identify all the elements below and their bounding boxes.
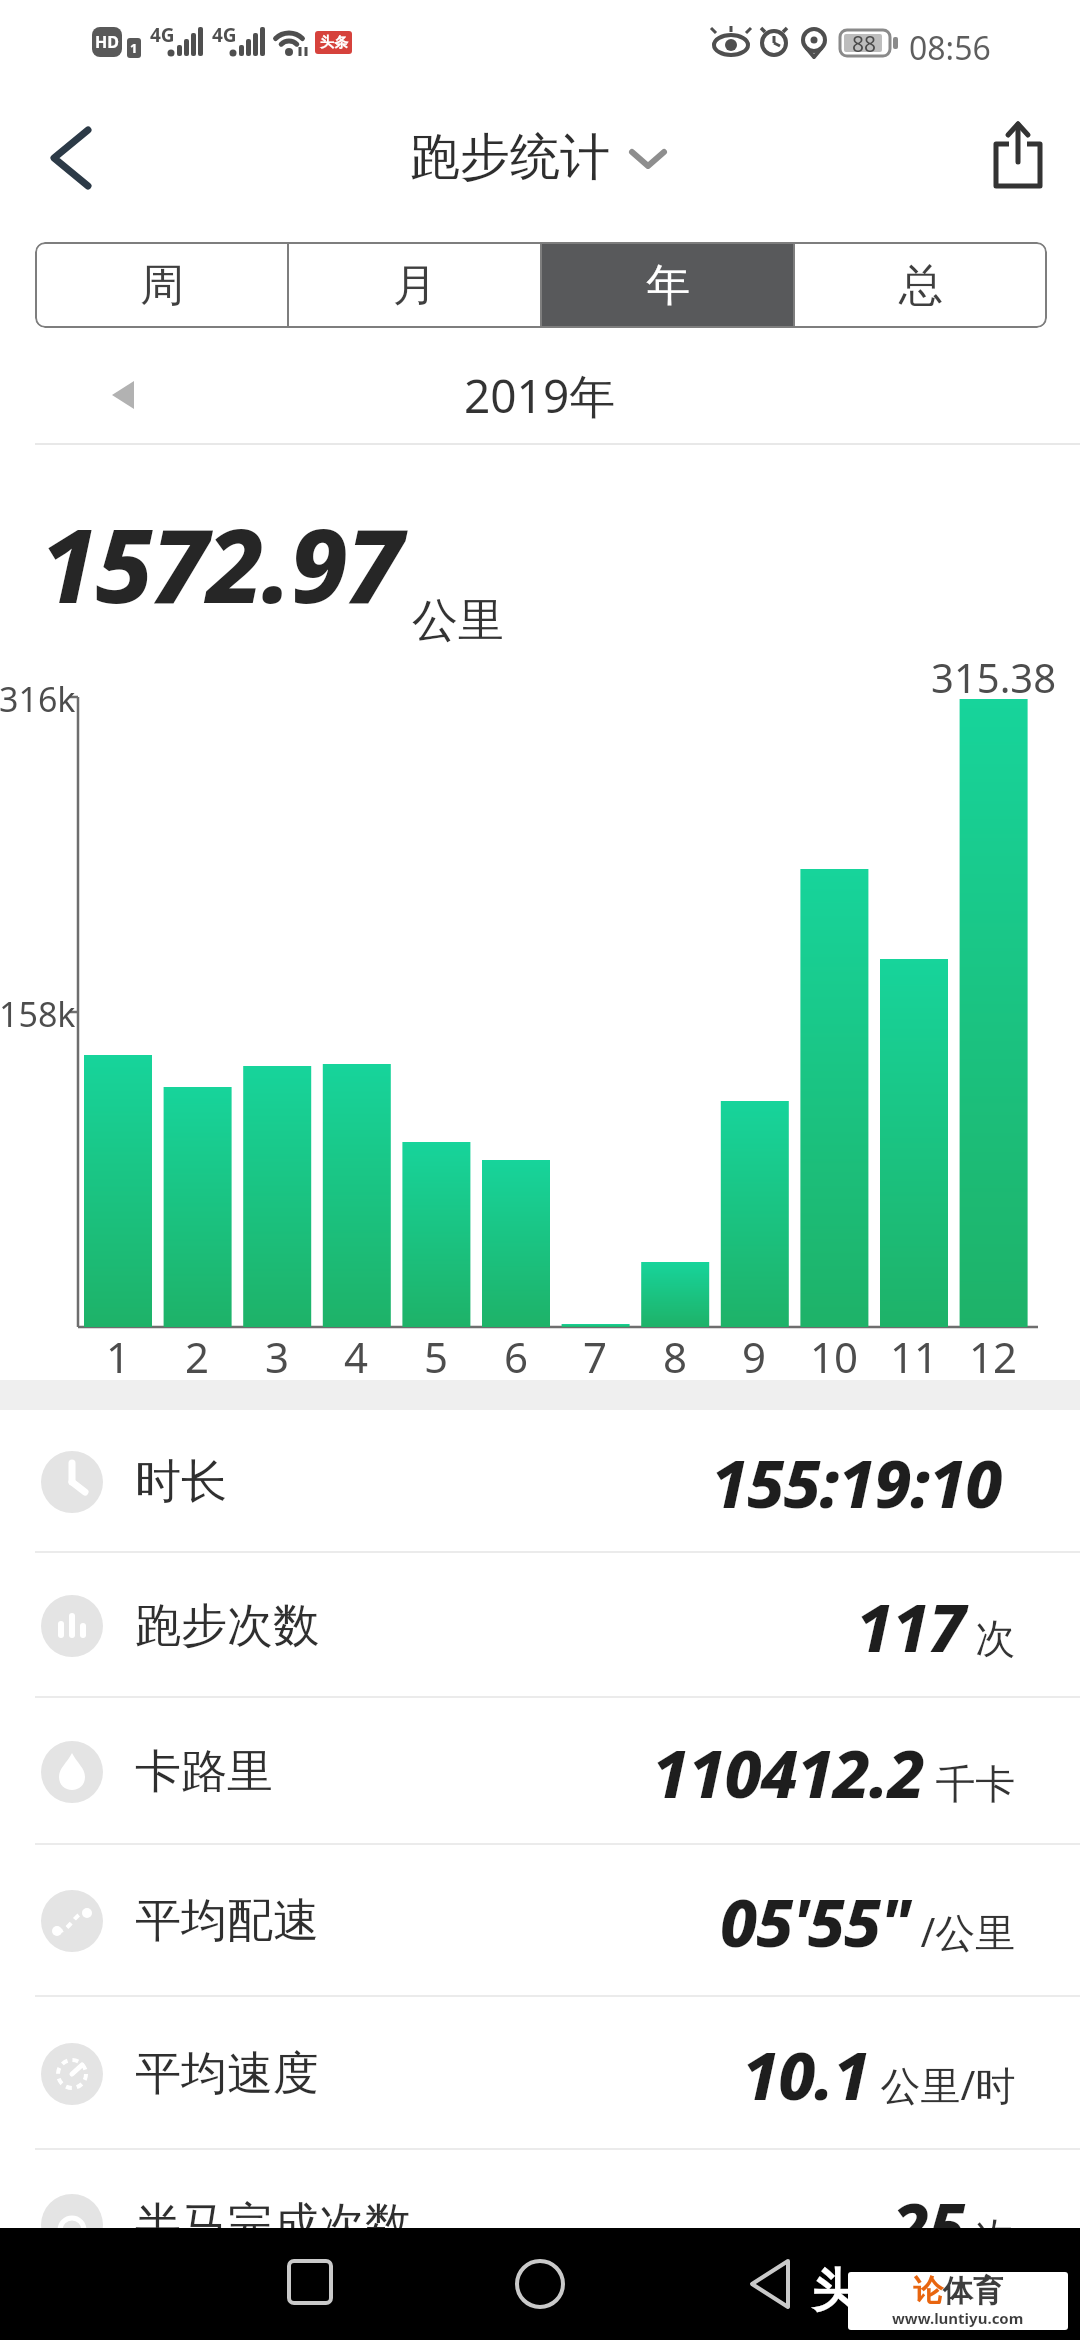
- staticText: 316k: [0, 676, 76, 718]
- staticText: 12: [969, 1328, 1018, 1376]
- staticText: 05'55": [720, 1876, 910, 1966]
- staticText: 155:19:10: [711, 1437, 1002, 1527]
- staticText: 158k: [0, 991, 76, 1033]
- staticText: 7: [583, 1328, 608, 1376]
- button[interactable]: [270, 2243, 350, 2325]
- staticText: 8: [663, 1328, 688, 1376]
- staticText: 总: [899, 258, 943, 313]
- button[interactable]: [730, 2243, 810, 2325]
- staticText: 11: [890, 1328, 939, 1376]
- button[interactable]: 跑步次数: [0, 1553, 1080, 1698]
- staticText: 110412.2: [652, 1727, 925, 1817]
- staticText: 1572.97: [40, 494, 402, 633]
- staticText: 跑步统计: [410, 126, 610, 189]
- button[interactable]: 跑步统计: [400, 120, 680, 196]
- staticText: 次: [965, 2208, 1016, 2263]
- staticText: 10.1: [742, 2029, 870, 2119]
- staticText: 公里/时: [870, 2057, 1016, 2112]
- staticText: 9: [742, 1328, 767, 1376]
- staticText: 25: [892, 2180, 965, 2270]
- staticText: 2019年: [464, 364, 616, 427]
- staticText: 时长: [135, 1453, 227, 1511]
- staticText: 1: [130, 39, 138, 57]
- staticText: 跑步次数: [135, 1597, 319, 1655]
- staticText: 6: [504, 1328, 529, 1376]
- staticText: 1: [106, 1328, 131, 1376]
- staticText: 月: [393, 258, 437, 313]
- staticText: 千卡: [925, 1755, 1016, 1810]
- button[interactable]: 半马完成次数: [0, 2150, 1080, 2300]
- staticText: 2: [185, 1328, 210, 1376]
- staticText: 半马完成次数: [135, 2196, 411, 2254]
- button[interactable]: 平均速度: [0, 1997, 1080, 2150]
- staticText: 头: [812, 2262, 858, 2320]
- button[interactable]: 2019年: [0, 345, 1080, 445]
- button[interactable]: [500, 2243, 580, 2325]
- staticText: 年: [646, 258, 690, 313]
- button[interactable]: 年: [541, 242, 794, 328]
- staticText: HD: [95, 31, 119, 53]
- button[interactable]: [30, 114, 110, 202]
- staticText: www.luntiyu.com: [892, 2308, 1024, 2328]
- button[interactable]: 周: [35, 242, 288, 328]
- staticText: 周: [140, 258, 184, 313]
- staticText: 平均配速: [135, 1892, 319, 1950]
- button[interactable]: 总: [794, 242, 1047, 328]
- staticText: 117: [856, 1581, 965, 1671]
- staticText: 5: [424, 1328, 449, 1376]
- button[interactable]: 平均配速: [0, 1845, 1080, 1997]
- staticText: 卡路里: [135, 1743, 273, 1801]
- button[interactable]: 月: [288, 242, 541, 328]
- staticText: 公里: [412, 592, 504, 650]
- button[interactable]: [980, 114, 1060, 202]
- button[interactable]: 卡路里: [0, 1698, 1080, 1845]
- staticText: 4G: [150, 22, 175, 48]
- staticText: 4: [344, 1328, 369, 1376]
- button[interactable]: 时长: [0, 1410, 1080, 1553]
- staticText: 头条: [320, 34, 348, 52]
- staticText: 4G: [212, 22, 237, 48]
- staticText: 3: [265, 1328, 290, 1376]
- staticText: 88: [852, 30, 877, 56]
- staticText: 体育: [943, 2272, 1003, 2310]
- staticText: 10: [810, 1328, 859, 1376]
- staticText: 平均速度: [135, 2045, 319, 2103]
- staticText: 315.38: [931, 650, 1057, 694]
- staticText: 次: [965, 1609, 1016, 1664]
- staticText: /公里: [910, 1904, 1016, 1959]
- staticText: 08:56: [909, 26, 991, 70]
- staticText: 论: [913, 2272, 943, 2310]
